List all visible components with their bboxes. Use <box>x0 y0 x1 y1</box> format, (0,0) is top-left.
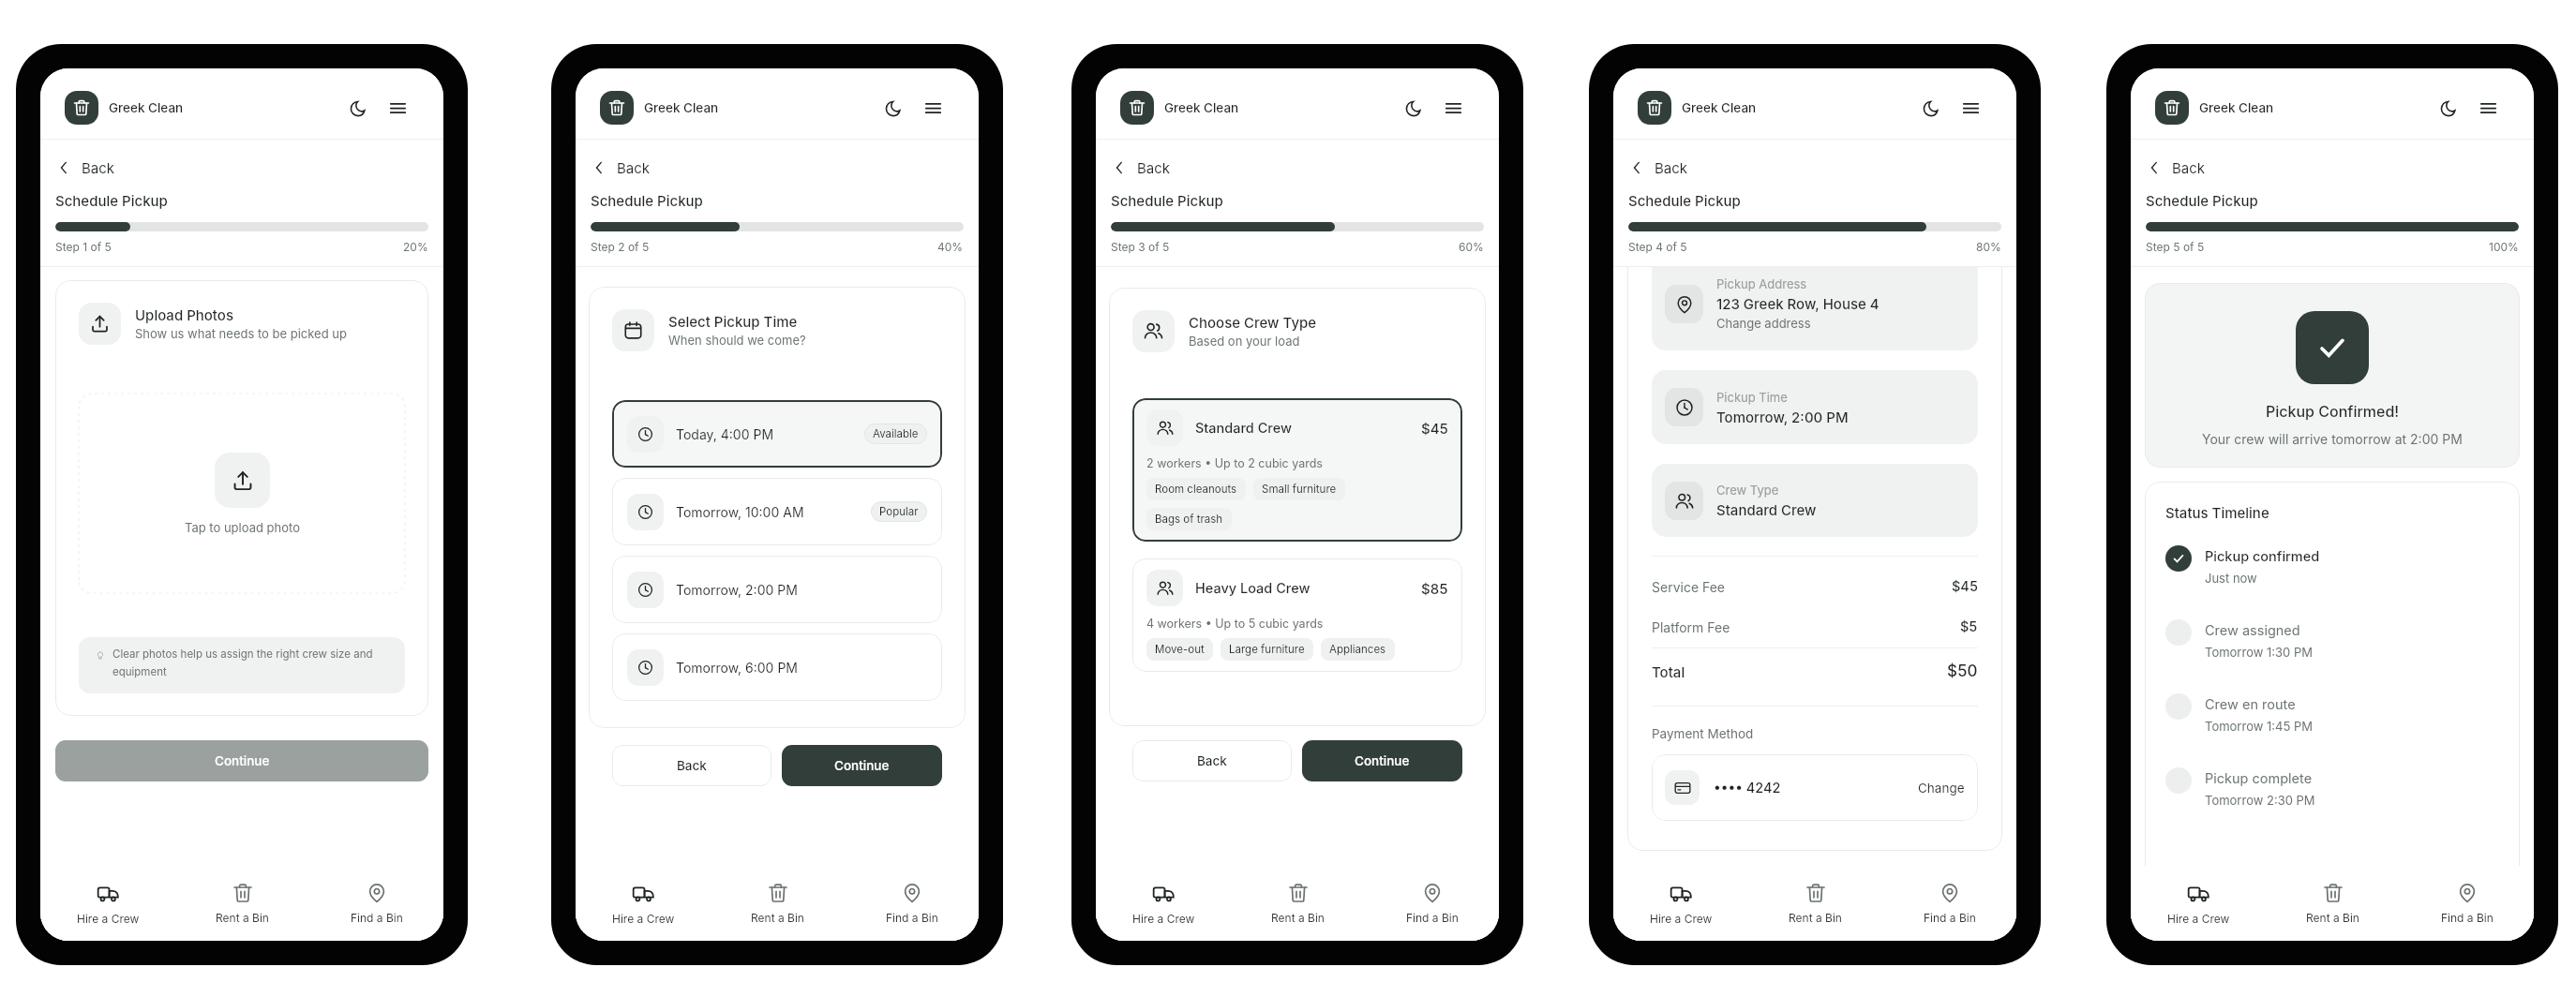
staticText: Schedule Pickup <box>2146 192 2258 209</box>
staticText: Pickup Confirmed! <box>2266 402 2400 420</box>
button[interactable]: Hire a Crew <box>40 866 175 941</box>
button[interactable]: Rent a Bin <box>175 866 309 941</box>
staticText: 100% <box>2489 240 2519 254</box>
staticText: Total <box>1652 663 1685 680</box>
staticText: Schedule Pickup <box>1628 192 1741 209</box>
staticText: Tomorrow 1:45 PM <box>2205 719 2314 734</box>
staticText: Change <box>1918 781 1965 796</box>
button[interactable]: Back <box>1628 159 1688 176</box>
button[interactable]: Rent a Bin <box>1748 866 1882 941</box>
button[interactable]: Greek Clean <box>65 91 98 125</box>
staticText: $85 <box>1421 580 1448 597</box>
button[interactable]: Menu <box>384 95 411 121</box>
button[interactable]: Greek Clean <box>600 91 634 125</box>
button[interactable]: Back <box>55 159 115 176</box>
staticText: Rent a Bin <box>1271 911 1325 925</box>
button[interactable]: Continue <box>782 745 942 786</box>
button[interactable]: Find a Bin <box>309 866 443 941</box>
staticText: Status Timeline <box>2165 504 2269 521</box>
staticText: Your crew will arrive tomorrow at 2:00 P… <box>2202 431 2463 447</box>
button[interactable]: Continue <box>1302 740 1462 781</box>
button[interactable]: Toggle dark mode <box>1917 95 1943 121</box>
button[interactable]: Menu <box>920 95 946 121</box>
staticText: Back <box>1137 159 1171 176</box>
staticText: Hire a Crew <box>1650 912 1713 926</box>
staticText: Back <box>1655 159 1688 176</box>
staticText: Find a Bin <box>1406 911 1459 925</box>
staticText: 2 workers • Up to 2 cubic yards <box>1146 456 1323 470</box>
button[interactable]: Back <box>1651 868 1809 909</box>
button[interactable]: Greek Clean <box>1120 91 1154 125</box>
button[interactable]: Crew Type <box>1652 464 1978 537</box>
staticText: Greek Clean <box>109 100 184 115</box>
button[interactable]: Rent a Bin <box>711 866 845 941</box>
staticText: Step 1 of 5 <box>55 240 112 254</box>
button[interactable]: Toggle dark mode <box>2434 95 2461 121</box>
staticText: Hire a Crew <box>612 912 675 926</box>
staticText: Crew assigned <box>2205 622 2300 639</box>
button[interactable]: Back <box>591 159 651 176</box>
button[interactable]: Find a Bin <box>1882 866 2016 941</box>
staticText: 60% <box>1459 240 1484 254</box>
staticText: Pickup Time <box>1716 390 1788 405</box>
staticText: Crew Type <box>1716 483 1779 498</box>
button[interactable]: Find a Bin <box>845 866 979 941</box>
button[interactable]: Hire a Crew <box>2131 866 2266 941</box>
button[interactable]: Menu <box>1957 95 1984 121</box>
button[interactable]: Hire a Crew <box>576 866 711 941</box>
button[interactable]: Menu <box>1440 95 1466 121</box>
button[interactable]: Greek Clean <box>2155 91 2189 125</box>
button[interactable]: Hire a Crew <box>1096 866 1231 941</box>
staticText: Small furniture <box>1262 483 1337 496</box>
staticText: 4 workers • Up to 5 cubic yards <box>1146 617 1324 631</box>
button[interactable]: Continue <box>55 740 428 781</box>
button[interactable]: Hire a Crew <box>1613 866 1748 941</box>
button[interactable]: Tomorrow, 10:00 AM <box>612 478 942 545</box>
staticText: 80% <box>1976 240 2001 254</box>
staticText: Step 4 of 5 <box>1628 240 1687 254</box>
button[interactable]: Pickup Address <box>1652 267 1978 350</box>
staticText: Back <box>82 159 115 176</box>
button[interactable]: Find a Bin <box>1365 866 1499 941</box>
staticText: $45 <box>1421 420 1448 437</box>
staticText: •••• 4242 <box>1714 780 1781 796</box>
staticText: Popular <box>879 505 919 518</box>
staticText: Tomorrow, 2:00 PM <box>676 582 798 598</box>
staticText: Show us what needs to be picked up <box>135 326 347 341</box>
button[interactable]: Greek Clean <box>1638 91 1671 125</box>
button[interactable]: Tomorrow, 2:00 PM <box>612 556 942 623</box>
staticText: Tomorrow, 2:00 PM <box>1716 409 1849 425</box>
staticText: Find a Bin <box>2441 911 2494 925</box>
staticText: Schedule Pickup <box>55 192 168 209</box>
staticText: Continue <box>215 753 270 768</box>
button[interactable]: Menu <box>2475 95 2501 121</box>
button[interactable]: Toggle dark mode <box>1400 95 1426 121</box>
button[interactable]: Back <box>1132 740 1292 781</box>
button[interactable]: Tomorrow, 6:00 PM <box>612 633 942 701</box>
staticText: Available <box>873 427 919 440</box>
staticText: Tomorrow, 10:00 AM <box>676 504 804 520</box>
staticText: Step 5 of 5 <box>2146 240 2205 254</box>
staticText: Continue <box>1355 753 1410 768</box>
button[interactable]: Toggle dark mode <box>879 95 906 121</box>
button[interactable]: Heavy Load Crew <box>1132 558 1462 672</box>
button[interactable]: Rent a Bin <box>2266 866 2400 941</box>
button[interactable]: Rent a Bin <box>1231 866 1365 941</box>
button[interactable]: Today, 4:00 PM <box>612 400 942 468</box>
button[interactable]: Confirm & Pay <box>1820 868 1979 909</box>
button[interactable]: Pickup Time <box>1652 370 1978 444</box>
staticText: Back <box>2172 159 2206 176</box>
button[interactable]: Standard Crew <box>1132 398 1462 542</box>
button[interactable]: Back <box>2146 159 2206 176</box>
button[interactable]: •••• 4242 <box>1652 754 1978 821</box>
button[interactable]: Back <box>612 745 771 786</box>
staticText: $50 <box>1947 662 1978 681</box>
staticText: Pickup complete <box>2205 770 2313 787</box>
staticText: Choose Crew Type <box>1189 314 1317 331</box>
staticText: Tomorrow, 6:00 PM <box>676 660 798 676</box>
button[interactable]: Find a Bin <box>2400 866 2534 941</box>
staticText: Find a Bin <box>1924 911 1976 925</box>
staticText: Upload Photos <box>135 306 233 323</box>
button[interactable]: Toggle dark mode <box>344 95 370 121</box>
button[interactable]: Back <box>1111 159 1171 176</box>
